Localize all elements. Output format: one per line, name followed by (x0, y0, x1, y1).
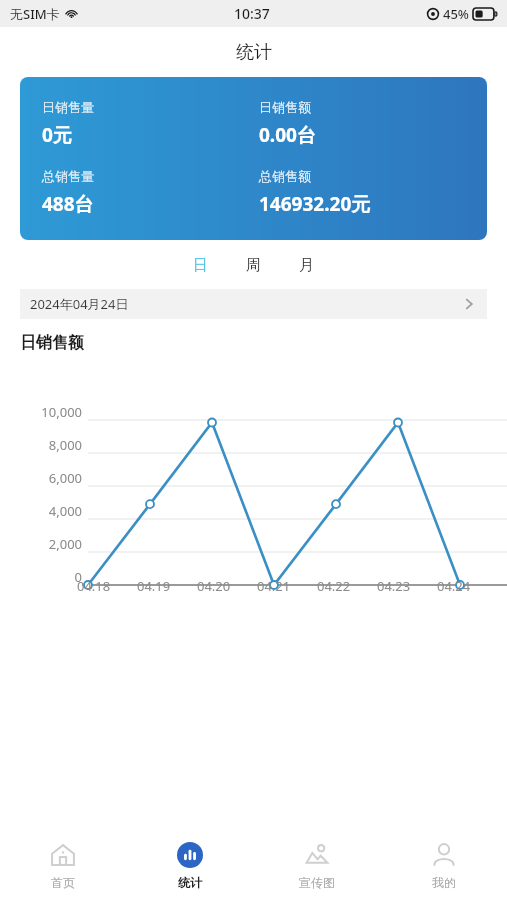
staticText: 日销售额 (20, 333, 84, 353)
staticText: 04.19 (137, 577, 171, 595)
staticText: 04.22 (317, 577, 351, 595)
staticText: 无SIM卡 (10, 5, 60, 23)
button[interactable]: 2024年04月24日 (20, 289, 487, 319)
staticText: 146932.20元 (259, 191, 371, 217)
staticText: 统计 (178, 875, 202, 890)
staticText: 日 (193, 256, 208, 275)
staticText: 04.20 (197, 577, 231, 595)
staticText: 周 (246, 256, 261, 275)
staticText: 10,000 (41, 403, 82, 421)
staticText: 8,000 (48, 436, 82, 454)
staticText: 日销售量 (42, 99, 94, 115)
staticText: 04.24 (437, 577, 471, 595)
staticText: 4,000 (48, 502, 82, 520)
button[interactable]: 宣传图 (253, 830, 380, 900)
staticText: 总销售量 (42, 168, 94, 184)
staticText: 2,000 (48, 535, 82, 553)
button[interactable]: 日销售量 (20, 77, 487, 240)
button[interactable]: 首页 (0, 830, 126, 900)
button[interactable]: 我的 (380, 830, 507, 900)
staticText: 04.23 (377, 577, 411, 595)
staticText: 6,000 (48, 469, 82, 487)
staticText: 统计 (236, 41, 272, 64)
staticText: 日销售额 (259, 99, 311, 115)
button[interactable]: 日 (187, 254, 214, 277)
staticText: 宣传图 (299, 875, 335, 890)
staticText: 月 (299, 256, 314, 275)
staticText: 10:37 (234, 4, 270, 23)
staticText: 04.21 (257, 577, 291, 595)
staticText: 总销售额 (259, 168, 311, 184)
staticText: 我的 (432, 875, 456, 890)
button[interactable]: 月 (293, 254, 320, 277)
staticText: 04.18 (77, 577, 111, 595)
staticText: 首页 (51, 875, 75, 890)
staticText: 0.00台 (259, 122, 316, 148)
staticText: 2024年04月24日 (30, 295, 129, 313)
button[interactable]: 周 (240, 254, 267, 277)
staticText: 488台 (42, 191, 94, 217)
staticText: 45% (443, 5, 469, 23)
button[interactable]: 统计 (126, 830, 253, 900)
staticText: 0元 (42, 122, 72, 148)
other: Select date (461, 296, 477, 312)
staticText: 0 (74, 568, 82, 586)
